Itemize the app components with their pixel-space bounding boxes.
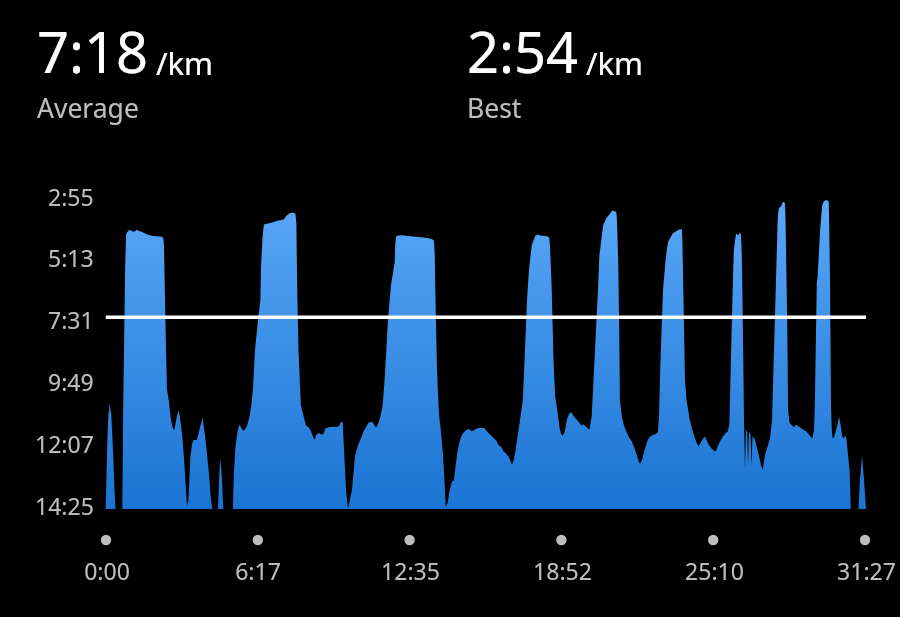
staticText: 12:35	[381, 555, 440, 586]
staticText: /km	[156, 42, 214, 84]
staticText: 0:00	[84, 555, 130, 586]
staticText: 2:55	[48, 181, 94, 211]
staticText: 5:13	[48, 242, 94, 272]
staticText: Average	[37, 90, 139, 126]
staticText: 12:07	[35, 428, 94, 458]
staticText: 14:25	[35, 490, 94, 520]
staticText: /km	[586, 42, 644, 84]
staticText: 9:49	[48, 366, 94, 396]
staticText: 18:52	[533, 555, 592, 586]
staticText: Best	[467, 90, 522, 126]
staticText: 7:31	[48, 304, 94, 334]
staticText: 7:18	[37, 13, 149, 89]
staticText: 6:17	[235, 555, 281, 586]
staticText: 31:27	[837, 555, 896, 586]
staticText: 2:54	[467, 13, 579, 89]
staticText: 25:10	[685, 555, 744, 586]
